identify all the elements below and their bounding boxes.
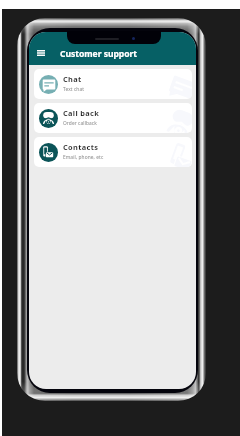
staticText: Contacts bbox=[63, 142, 99, 152]
staticText: Order callback bbox=[63, 120, 97, 127]
staticText: Call back bbox=[63, 108, 100, 118]
button[interactable]: Open navigation menu bbox=[34, 47, 48, 59]
button[interactable]: Chat bbox=[34, 69, 192, 99]
staticText: Customer support bbox=[60, 48, 138, 60]
button[interactable]: Contacts bbox=[34, 137, 192, 167]
staticText: Email, phone, etc bbox=[63, 154, 104, 161]
button[interactable]: Call back bbox=[34, 103, 192, 133]
staticText: Text chat bbox=[63, 86, 85, 93]
staticText: Chat bbox=[63, 74, 82, 84]
